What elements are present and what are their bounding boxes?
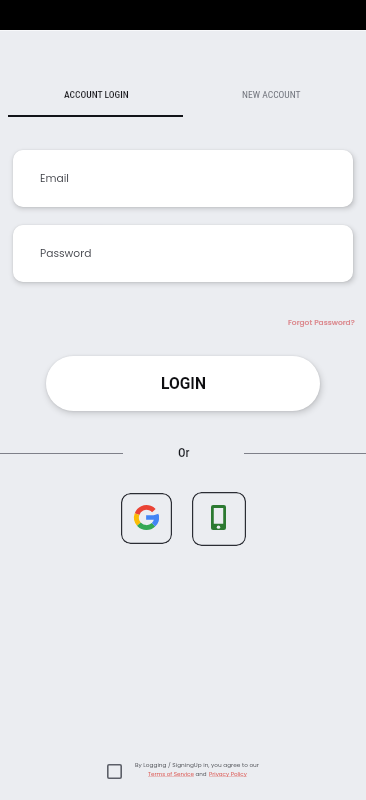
button[interactable]: Forgot Password?	[281, 313, 362, 331]
button[interactable]: NEW ACCOUNT	[183, 76, 366, 119]
button[interactable]: Email	[13, 150, 353, 207]
button[interactable]: Terms of Service	[148, 770, 194, 778]
button[interactable]: Sign in with Google	[121, 493, 172, 544]
staticText: NEW ACCOUNT	[242, 89, 301, 100]
button[interactable]: Password	[13, 225, 353, 282]
staticText: Forgot Password?	[288, 317, 355, 327]
staticText: LOGIN	[161, 375, 206, 393]
staticText: Or	[178, 445, 190, 460]
staticText: Password	[40, 246, 92, 261]
staticText: Email	[40, 171, 69, 186]
button[interactable]: Accept terms and conditions	[101, 758, 128, 785]
button[interactable]: LOGIN	[46, 356, 320, 411]
staticText: ACCOUNT LOGIN	[64, 89, 129, 100]
staticText: and	[194, 770, 209, 778]
button[interactable]: ACCOUNT LOGIN	[0, 76, 183, 119]
button[interactable]: Sign in with phone number	[192, 492, 246, 546]
button[interactable]: Privacy Policy	[209, 770, 247, 778]
staticText: By Logging / SigningUp in, you agree to …	[135, 761, 259, 769]
